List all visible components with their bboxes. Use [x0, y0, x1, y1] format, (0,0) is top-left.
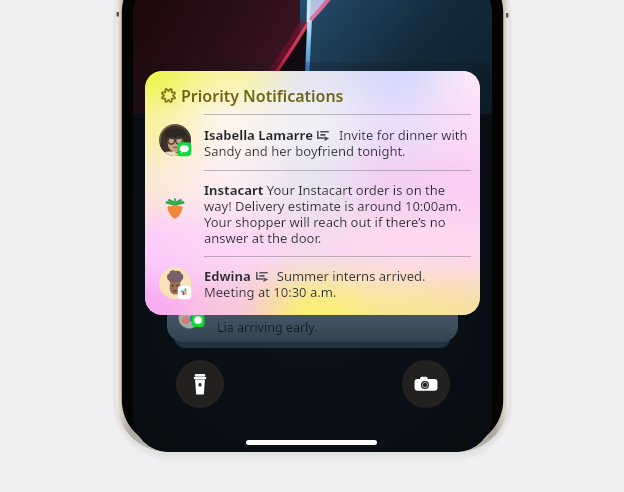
button[interactable]: Priority Notifications — [145, 71, 480, 315]
button[interactable]: Lia arriving early. — [167, 300, 458, 342]
staticText: Edwina Summer interns arrived. Meeting a… — [204, 267, 426, 300]
button[interactable]: Flashlight — [176, 360, 224, 408]
staticText: Lia arriving early. — [217, 319, 318, 336]
staticText: Instacart Your Instacart order is on the… — [204, 181, 476, 246]
staticText: Isabella Lamarre Invite for dinner with … — [204, 126, 472, 159]
button[interactable]: Camera — [402, 360, 450, 408]
staticText: Priority Notifications — [181, 85, 344, 107]
